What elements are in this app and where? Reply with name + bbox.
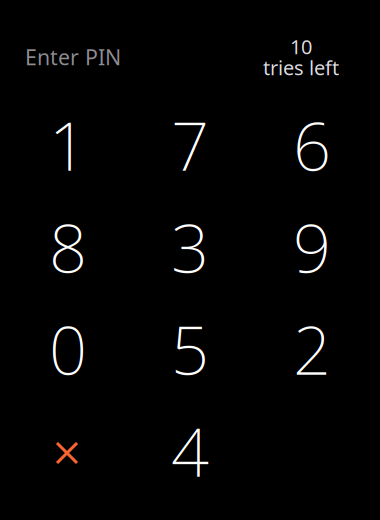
button[interactable]: 6 <box>251 94 373 196</box>
staticText: 5 <box>171 305 209 393</box>
staticText: 6 <box>293 101 331 189</box>
staticText: 3 <box>171 203 209 291</box>
button[interactable]: 9 <box>251 196 373 298</box>
button[interactable]: Enter PIN <box>25 43 121 71</box>
button[interactable]: 7 <box>129 94 251 196</box>
button[interactable]: 0 <box>7 298 129 400</box>
staticText: 8 <box>49 203 87 291</box>
staticText: tries left <box>263 54 339 81</box>
staticText: 9 <box>293 203 331 291</box>
button[interactable]: 8 <box>7 196 129 298</box>
button[interactable]: 3 <box>129 196 251 298</box>
staticText: 1 <box>49 101 87 189</box>
button[interactable]: 2 <box>251 298 373 400</box>
staticText: 2 <box>293 305 331 393</box>
button[interactable]: 4 <box>129 400 251 502</box>
button[interactable]: 1 <box>7 94 129 196</box>
staticText: Enter PIN <box>25 43 121 71</box>
button[interactable]: Delete <box>7 400 129 502</box>
staticText: 4 <box>171 407 209 495</box>
staticText: 10 <box>290 33 312 60</box>
staticText: 0 <box>49 305 87 393</box>
button[interactable]: 5 <box>129 298 251 400</box>
staticText: 7 <box>171 101 209 189</box>
